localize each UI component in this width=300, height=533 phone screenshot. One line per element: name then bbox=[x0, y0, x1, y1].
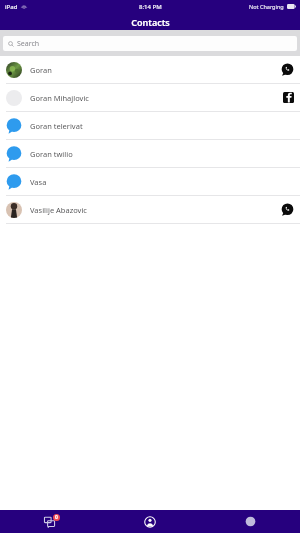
staticText: Goran telerivat bbox=[30, 121, 83, 131]
staticText: Goran twilio bbox=[30, 149, 73, 159]
staticText: iPad bbox=[5, 3, 18, 11]
button[interactable]: Goran bbox=[0, 56, 300, 83]
button[interactable]: Goran twilio bbox=[0, 140, 300, 167]
button[interactable]: Facebook bbox=[283, 92, 294, 103]
staticText: 0 bbox=[55, 514, 58, 521]
button[interactable]: Vasilije Abazovic bbox=[0, 196, 300, 223]
button[interactable]: WhatsApp bbox=[281, 63, 294, 76]
staticText: Goran bbox=[30, 65, 52, 75]
staticText: Search bbox=[17, 39, 40, 49]
staticText: Goran Mihajlovic bbox=[30, 93, 89, 103]
button[interactable]: WhatsApp bbox=[281, 203, 294, 216]
button[interactable]: Search bbox=[3, 36, 297, 51]
button[interactable]: Chats bbox=[0, 510, 100, 533]
button[interactable]: Goran telerivat bbox=[0, 112, 300, 139]
button[interactable]: Profile bbox=[200, 510, 300, 533]
staticText: 8:14 PM bbox=[139, 3, 162, 11]
staticText: Not Charging bbox=[249, 3, 284, 10]
button[interactable]: Contacts bbox=[100, 510, 200, 533]
button[interactable]: Goran Mihajlovic bbox=[0, 84, 300, 111]
staticText: Vasilije Abazovic bbox=[30, 205, 87, 215]
staticText: Vasa bbox=[30, 177, 47, 187]
button[interactable]: Vasa bbox=[0, 168, 300, 195]
staticText: Contacts bbox=[131, 16, 170, 28]
